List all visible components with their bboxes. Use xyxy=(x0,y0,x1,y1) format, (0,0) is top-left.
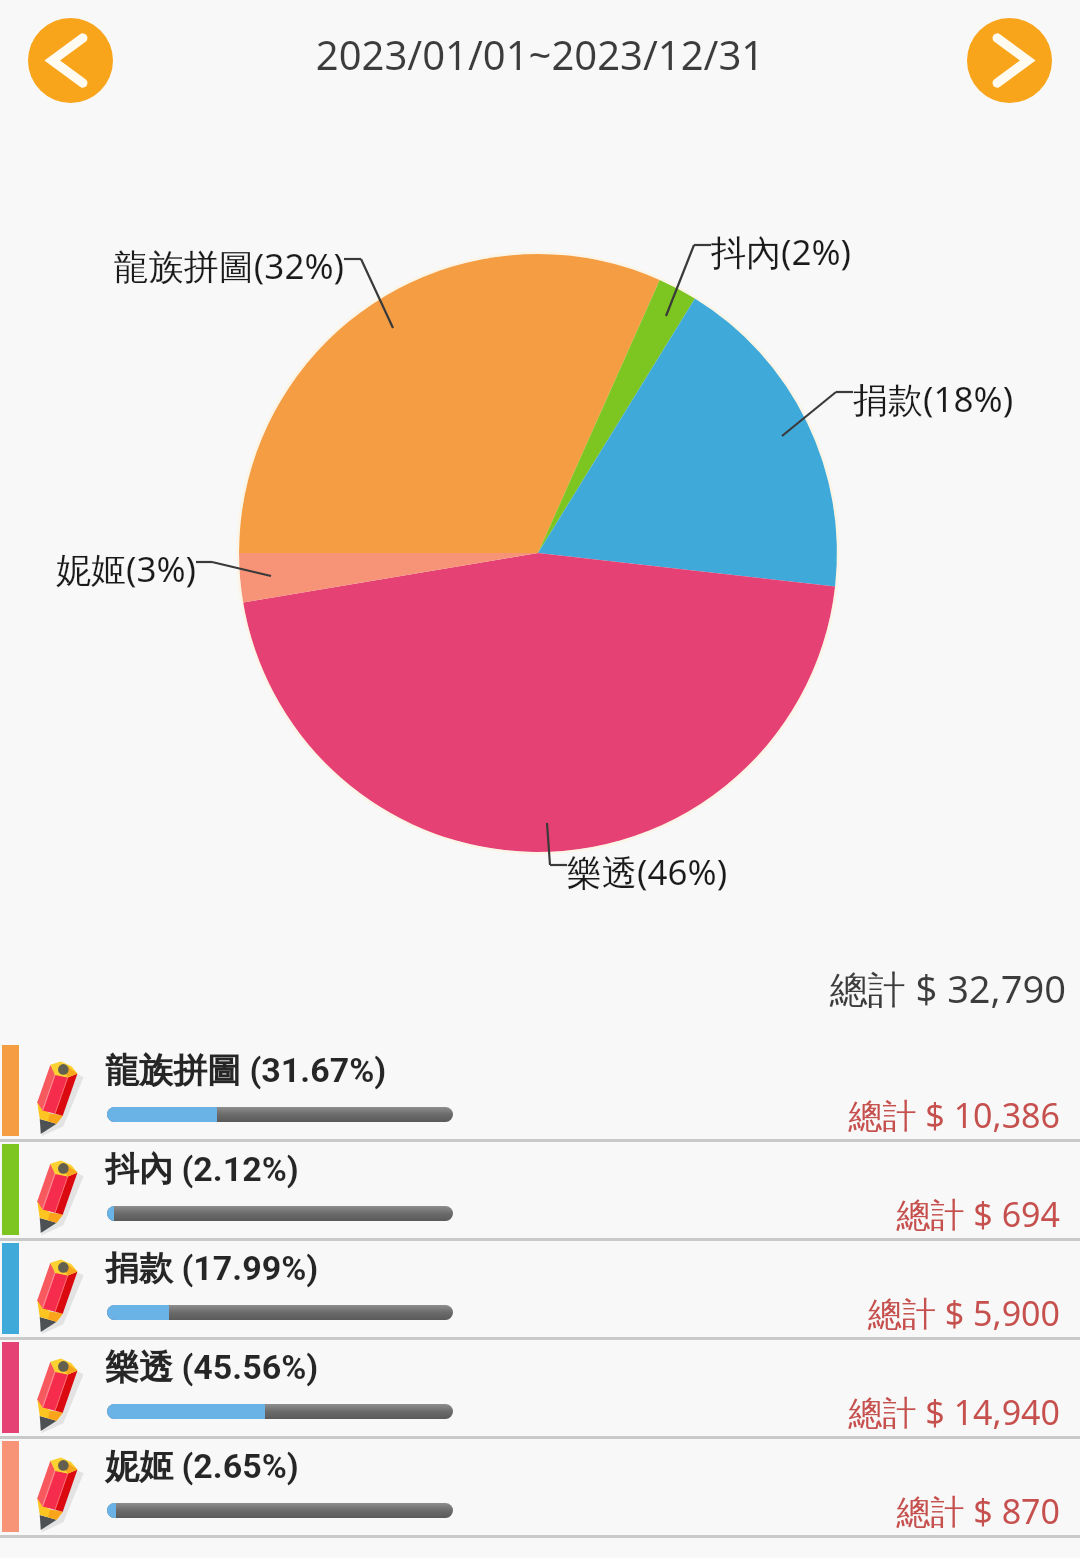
staticText: 2023/01/01~2023/12/31 xyxy=(0,27,1080,81)
staticText: 樂透(46%) xyxy=(567,848,728,896)
staticText: 龍族拼圖(32%) xyxy=(0,242,344,290)
button[interactable]: 捐款 (17.99%) xyxy=(0,1238,1080,1337)
staticText: 抖內(2%) xyxy=(711,228,852,276)
staticText: 總計 $ 14,940 xyxy=(0,1389,1060,1435)
staticText: 捐款 (17.99%) xyxy=(105,1247,319,1290)
staticText: 妮姬 (2.65%) xyxy=(105,1445,299,1488)
button[interactable]: 樂透 (45.56%) xyxy=(0,1337,1080,1436)
button[interactable]: 妮姬 (2.65%) xyxy=(0,1436,1080,1535)
staticText: 妮姬(3%) xyxy=(0,545,196,593)
button[interactable]: Next period xyxy=(967,18,1052,103)
staticText: 總計 $ 870 xyxy=(0,1488,1060,1534)
staticText: 捐款(18%) xyxy=(853,375,1014,423)
staticText: 樂透 (45.56%) xyxy=(105,1346,319,1389)
staticText: 總計 $ 5,900 xyxy=(0,1290,1060,1336)
staticText: 龍族拼圖 (31.67%) xyxy=(105,1049,387,1092)
staticText: 總計 $ 10,386 xyxy=(0,1092,1060,1138)
staticText: 總計 $ 694 xyxy=(0,1191,1060,1237)
staticText: 抖內 (2.12%) xyxy=(105,1148,299,1191)
button[interactable]: 抖內 (2.12%) xyxy=(0,1139,1080,1238)
staticText: 總計 $ 32,790 xyxy=(0,962,1066,1014)
button[interactable]: 龍族拼圖 (31.67%) xyxy=(0,1040,1080,1139)
button[interactable]: Previous period xyxy=(28,18,113,103)
